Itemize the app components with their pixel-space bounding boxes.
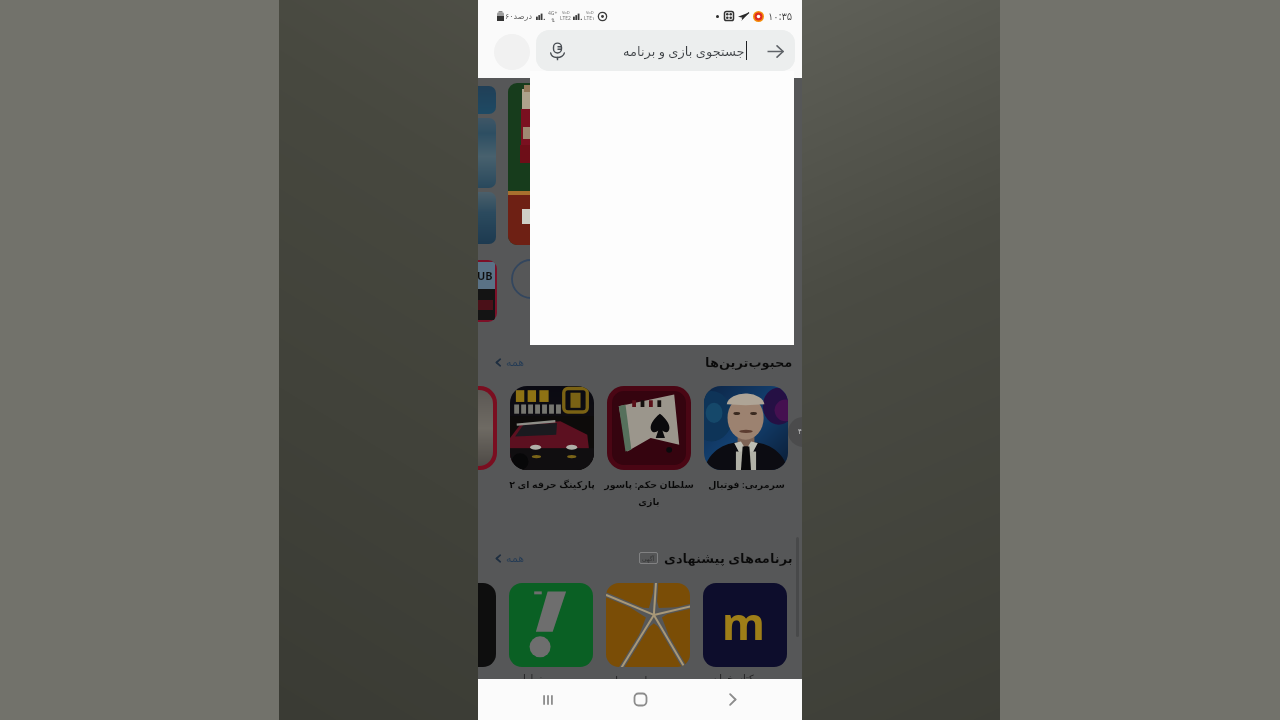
staticText: همه xyxy=(506,552,525,565)
staticText: LTE2 xyxy=(560,15,571,22)
staticText: LTE۱ xyxy=(584,15,595,22)
button[interactable] xyxy=(509,583,593,667)
button[interactable] xyxy=(478,583,496,667)
button[interactable]: آگهی xyxy=(639,552,658,564)
staticText: m xyxy=(722,593,765,653)
staticText: ۱۰:۳۵ xyxy=(768,9,793,23)
button[interactable]: Profile xyxy=(494,34,530,70)
staticText: سرمربی: فوتبال xyxy=(708,478,785,491)
staticText: نماوا xyxy=(523,673,543,679)
staticText: رادیو جوان xyxy=(608,673,653,679)
button[interactable]: Recent apps xyxy=(526,679,570,720)
button[interactable]: Voice search xyxy=(545,39,569,63)
button[interactable]: Search xyxy=(763,39,787,63)
staticText: برنامه‌های پیشنهادی xyxy=(664,549,793,567)
button[interactable]: سرمربی: فوتبال xyxy=(698,386,794,491)
button[interactable]: Back xyxy=(710,679,754,720)
button[interactable]: سلطان حکم: پاسور بازی xyxy=(601,386,697,507)
staticText: محبوب‌ترین‌ها xyxy=(705,355,793,370)
staticText: پارکینگ حرفه ای ۲ xyxy=(509,478,595,491)
staticText: VoD xyxy=(562,10,570,15)
staticText: VoD xyxy=(586,10,594,15)
staticText: سلطان حکم: پاسور بازی xyxy=(604,478,694,507)
button[interactable]: Home xyxy=(618,679,662,720)
staticText: آگهی xyxy=(642,555,655,562)
button[interactable] xyxy=(606,583,690,667)
staticText: همه xyxy=(506,356,525,369)
staticText: ⇅ xyxy=(551,17,556,23)
button[interactable]: تیزب xyxy=(478,386,503,489)
button[interactable]: پارکینگ حرفه ای ۲ xyxy=(504,386,600,491)
button[interactable]: همه xyxy=(493,552,525,565)
staticText: کتاب‌خوان xyxy=(712,673,754,679)
button[interactable]: همه xyxy=(493,356,525,369)
button[interactable]: Voice search xyxy=(536,30,795,71)
staticText: UB xyxy=(478,268,493,283)
button[interactable]: m xyxy=(703,583,787,667)
staticText: 4G+ xyxy=(548,10,558,17)
staticText: ۴.۳ xyxy=(798,427,802,437)
staticText: ۶۰درصد xyxy=(505,12,533,21)
staticText: جستجوی بازی و برنامه xyxy=(623,42,745,60)
